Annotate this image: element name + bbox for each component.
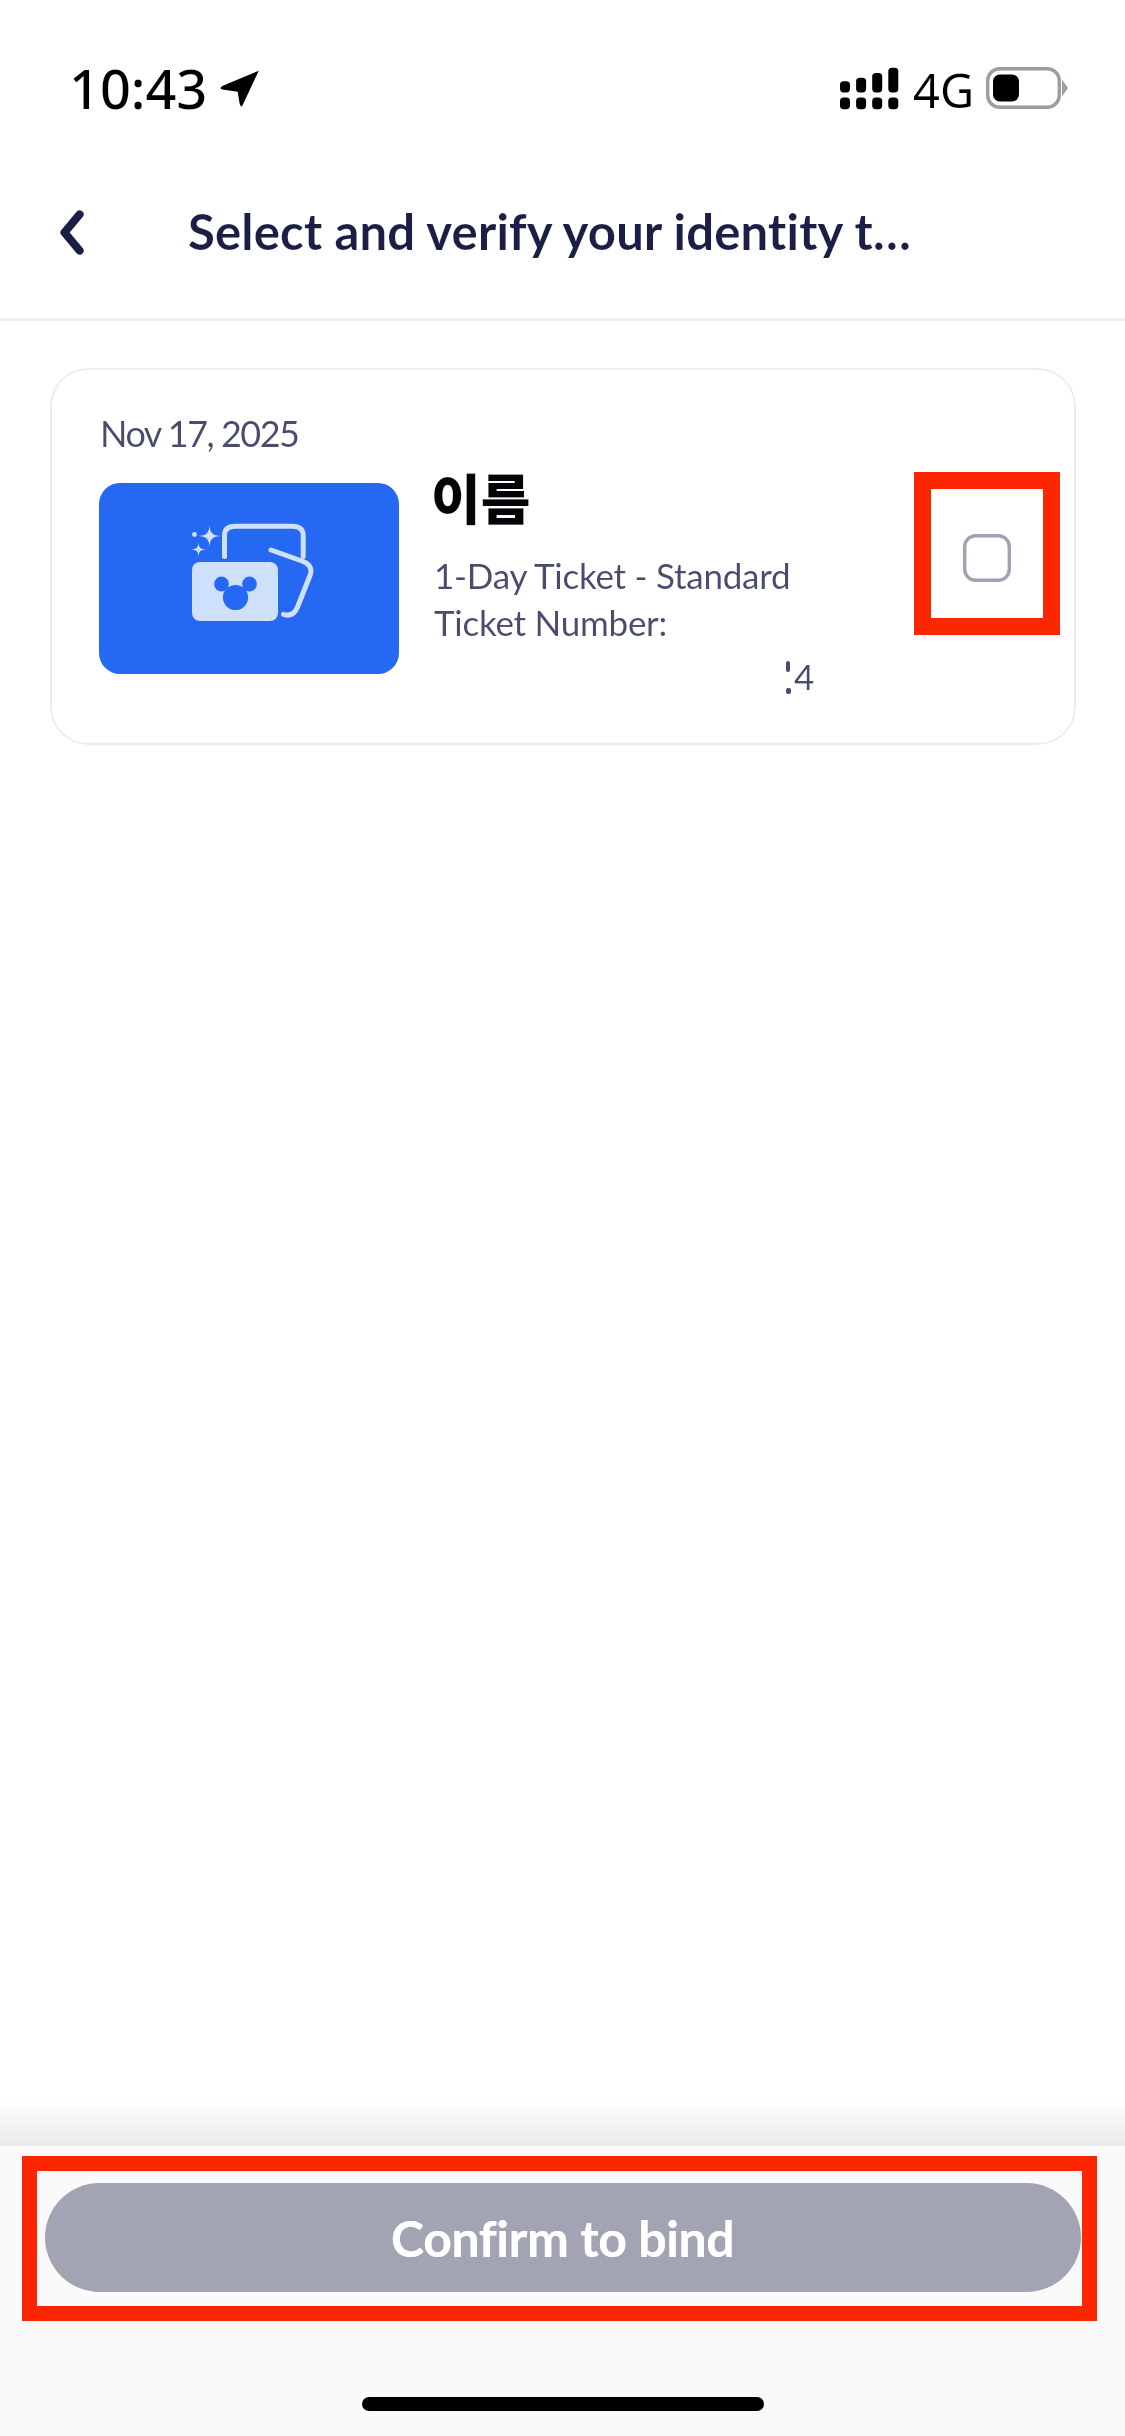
staticText: 10:43 xyxy=(69,51,208,125)
button[interactable]: Confirm to bind xyxy=(45,2183,1081,2292)
staticText: Confirm to bind xyxy=(391,2208,735,2268)
button[interactable]: Back xyxy=(23,183,121,281)
button[interactable]: Select this ticket xyxy=(963,534,1011,582)
staticText: 1-Day Ticket - Standard Ticket Number: xyxy=(434,554,791,644)
staticText: 이름 xyxy=(431,457,531,535)
staticText: 4G xyxy=(913,58,975,122)
staticText: Nov 17, 2025 xyxy=(100,411,299,454)
staticText: Select and verify your identity t… xyxy=(188,202,911,261)
button[interactable]: Nov 17, 2025 xyxy=(50,368,1076,745)
staticText: 4 xyxy=(794,655,815,697)
